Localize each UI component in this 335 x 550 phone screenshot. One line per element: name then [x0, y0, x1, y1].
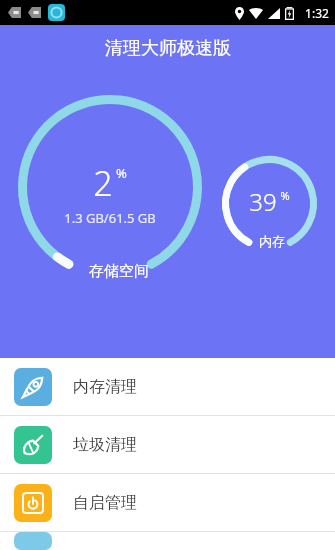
staticText: 39: [249, 185, 277, 218]
staticText: 内存: [259, 233, 285, 249]
staticText: 1:32: [305, 5, 329, 21]
button[interactable]: 内存清理: [0, 358, 335, 415]
staticText: 自启管理: [73, 493, 137, 513]
staticText: 清理大师极速版: [105, 37, 231, 60]
staticText: %: [280, 188, 290, 203]
staticText: 1.3 GB/61.5 GB: [64, 209, 156, 227]
staticText: %: [116, 164, 127, 182]
staticText: 内存清理: [73, 377, 137, 397]
button[interactable]: 垃圾清理: [0, 416, 335, 473]
staticText: 垃圾清理: [73, 435, 137, 455]
staticText: 存储空间: [89, 262, 149, 281]
button[interactable]: 自启管理: [0, 474, 335, 531]
button[interactable]: [0, 532, 335, 550]
staticText: 2: [93, 160, 113, 206]
